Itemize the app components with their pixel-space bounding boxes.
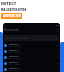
staticText: 00:1A:7D:DA [9, 69, 21, 72]
staticText: -63 [56, 62, 59, 65]
button[interactable]: Device 1 [4, 48, 59, 54]
button[interactable]: More options [56, 29, 59, 32]
staticText: 00:1A:7D:DA [9, 57, 21, 60]
staticText: BLUETOOTH [1, 7, 27, 13]
staticText: -61 [56, 50, 59, 53]
staticText: Device 3 [9, 60, 19, 63]
staticText: DETECT [1, 1, 17, 7]
button[interactable]: Device 4 [4, 66, 59, 72]
button[interactable]: Device 2 [4, 54, 59, 60]
staticText: -62 [56, 56, 59, 59]
button[interactable]: Scanning nearby devices [4, 35, 59, 41]
staticText: -60 [56, 44, 59, 47]
button[interactable]: Device 0 [4, 42, 59, 48]
staticText: Device 0 [9, 42, 19, 45]
staticText: 00:1A:7D:DA [9, 51, 21, 54]
staticText: 00:1A:7D:DA [9, 63, 21, 66]
button[interactable]: Previous screenshot [0, 32, 3, 72]
staticText: Device 4 [9, 66, 19, 69]
staticText: -64 [56, 68, 59, 71]
staticText: Device 1 [9, 48, 19, 51]
staticText: DEVICES [3, 13, 21, 19]
staticText: Scanning nearby devices [5, 37, 29, 40]
staticText: Bluetooth [4, 28, 19, 32]
staticText: 9:41 [4, 24, 8, 27]
button[interactable]: Device 3 [4, 60, 59, 66]
button[interactable]: Next screenshot [60, 42, 64, 72]
staticText: Device 2 [9, 54, 19, 57]
staticText: 00:1A:7D:DA [9, 45, 21, 48]
